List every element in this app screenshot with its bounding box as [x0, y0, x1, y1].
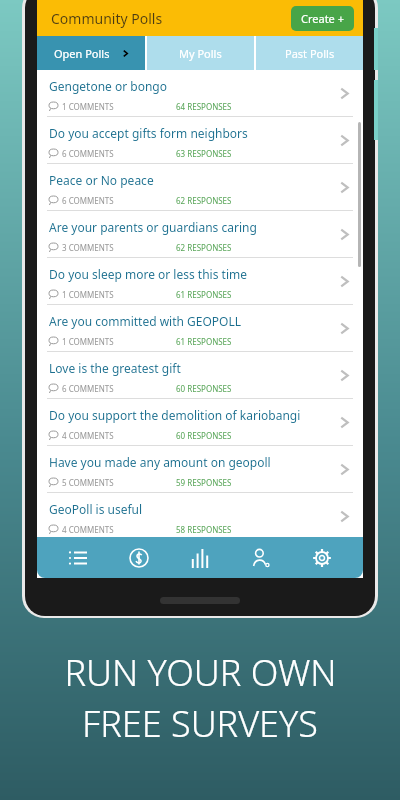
- button[interactable]: GeoPoll is useful: [37, 493, 363, 540]
- staticText: Peace or No peace: [49, 172, 307, 188]
- button[interactable]: Open Polls: [37, 36, 145, 70]
- button[interactable]: Profile: [241, 538, 281, 578]
- button[interactable]: Have you made any amount on geopoll: [37, 446, 363, 493]
- button[interactable]: Do you support the demolition of karioba…: [37, 399, 363, 446]
- staticText: 4 COMMENTS: [62, 524, 114, 535]
- button[interactable]: Create +: [291, 6, 354, 31]
- staticText: Past Polls: [285, 46, 335, 61]
- staticText: 58 RESPONSES: [176, 524, 232, 535]
- button[interactable]: Gengetone or bongo: [37, 70, 363, 117]
- staticText: Have you made any amount on geopoll: [49, 454, 307, 470]
- button[interactable]: Polls list: [58, 538, 98, 578]
- staticText: Create +: [301, 11, 344, 26]
- staticText: 64 RESPONSES: [176, 101, 232, 112]
- staticText: Love is the greatest gift: [49, 360, 307, 376]
- staticText: 62 RESPONSES: [176, 242, 232, 253]
- staticText: Do you accept gifts form neighbors: [49, 125, 307, 141]
- staticText: My Polls: [179, 46, 222, 61]
- staticText: FREE SURVEYS: [82, 699, 318, 748]
- staticText: 61 RESPONSES: [176, 336, 232, 347]
- staticText: 62 RESPONSES: [176, 195, 232, 206]
- staticText: 1 COMMENTS: [62, 336, 114, 347]
- staticText: 6 COMMENTS: [62, 195, 114, 206]
- staticText: GeoPoll is useful: [49, 501, 307, 517]
- button[interactable]: Do you sleep more or less this time: [37, 258, 363, 305]
- staticText: 6 COMMENTS: [62, 148, 114, 159]
- button[interactable]: Peace or No peace: [37, 164, 363, 211]
- button[interactable]: Statistics: [180, 538, 220, 578]
- staticText: Are you committed with GEOPOLL: [49, 313, 307, 329]
- staticText: Are your parents or guardians caring: [49, 219, 307, 235]
- button[interactable]: Are your parents or guardians caring: [37, 211, 363, 258]
- staticText: 60 RESPONSES: [176, 383, 232, 394]
- button[interactable]: Earnings: [119, 538, 159, 578]
- staticText: 3 COMMENTS: [62, 242, 114, 253]
- staticText: RUN YOUR OWN: [64, 648, 337, 697]
- staticText: 6 COMMENTS: [62, 383, 114, 394]
- button[interactable]: My Polls: [147, 36, 254, 70]
- button[interactable]: Do you accept gifts form neighbors: [37, 117, 363, 164]
- staticText: Community Polls: [51, 9, 163, 28]
- staticText: Do you sleep more or less this time: [49, 266, 307, 282]
- staticText: 59 RESPONSES: [176, 477, 232, 488]
- staticText: 60 RESPONSES: [176, 430, 232, 441]
- button[interactable]: Past Polls: [256, 36, 363, 70]
- staticText: 5 COMMENTS: [62, 477, 114, 488]
- button[interactable]: Love is the greatest gift: [37, 352, 363, 399]
- staticText: Open Polls: [54, 46, 110, 61]
- staticText: 4 COMMENTS: [62, 430, 114, 441]
- staticText: 61 RESPONSES: [176, 289, 232, 300]
- staticText: 1 COMMENTS: [62, 289, 114, 300]
- staticText: Do you support the demolition of karioba…: [49, 407, 307, 423]
- button[interactable]: Are you committed with GEOPOLL: [37, 305, 363, 352]
- staticText: 63 RESPONSES: [176, 148, 232, 159]
- staticText: 1 COMMENTS: [62, 101, 114, 112]
- staticText: Gengetone or bongo: [49, 78, 307, 94]
- button[interactable]: Settings: [302, 538, 342, 578]
